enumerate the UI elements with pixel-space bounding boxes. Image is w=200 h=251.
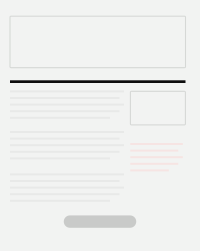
button[interactable]: Continue <box>64 215 136 228</box>
